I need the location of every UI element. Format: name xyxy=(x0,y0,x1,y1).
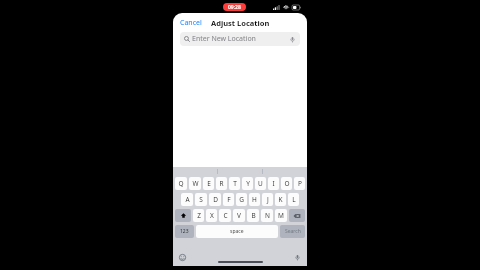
staticText: E xyxy=(207,179,211,188)
button[interactable]: R xyxy=(216,177,227,190)
button[interactable]: Dictation xyxy=(293,253,302,262)
button[interactable]: V xyxy=(233,209,245,222)
staticText: Q xyxy=(178,179,184,188)
staticText: Adjust Location xyxy=(211,18,270,28)
button[interactable]: K xyxy=(275,193,286,206)
staticText: A xyxy=(185,195,190,204)
button[interactable]: G xyxy=(236,193,247,206)
button[interactable]: D xyxy=(209,193,221,206)
button[interactable]: space xyxy=(196,225,278,238)
button[interactable]: Enter New Location xyxy=(180,32,300,46)
staticText: T xyxy=(233,179,237,188)
staticText: R xyxy=(219,179,224,188)
button[interactable]: P xyxy=(294,177,305,190)
staticText: M xyxy=(278,211,284,220)
button[interactable]: W xyxy=(189,177,201,190)
button[interactable]: E xyxy=(203,177,214,190)
button[interactable]: Backspace xyxy=(289,209,305,222)
staticText: K xyxy=(278,195,283,204)
staticText: J xyxy=(267,195,269,204)
staticText: I xyxy=(272,179,275,188)
staticText: P xyxy=(298,179,302,188)
button[interactable]: 123 xyxy=(175,225,194,238)
button[interactable]: I xyxy=(268,177,279,190)
button[interactable]: Emoji xyxy=(178,253,187,262)
staticText: Z xyxy=(197,211,201,220)
button[interactable]: O xyxy=(281,177,292,190)
button[interactable]: N xyxy=(261,209,273,222)
staticText: C xyxy=(223,211,228,220)
staticText: O xyxy=(284,179,290,188)
staticText: 123 xyxy=(180,228,189,235)
staticText: W xyxy=(192,179,199,188)
staticText: Search xyxy=(285,228,301,235)
staticText: X xyxy=(210,211,214,220)
button[interactable]: S xyxy=(195,193,207,206)
staticText: B xyxy=(251,211,256,220)
staticText: V xyxy=(237,211,241,220)
staticText: D xyxy=(213,195,218,204)
button[interactable]: M xyxy=(275,209,287,222)
button[interactable]: Shift xyxy=(175,209,191,222)
staticText: S xyxy=(199,195,203,204)
button[interactable]: B xyxy=(247,209,259,222)
staticText: F xyxy=(227,195,231,204)
button[interactable]: X xyxy=(206,209,217,222)
button[interactable]: Voice search xyxy=(289,36,296,43)
staticText: H xyxy=(252,195,257,204)
staticText: Y xyxy=(246,179,250,188)
staticText: L xyxy=(292,195,296,204)
button[interactable]: Z xyxy=(193,209,204,222)
button[interactable]: Search xyxy=(280,225,305,238)
staticText: N xyxy=(265,211,270,220)
button[interactable]: A xyxy=(181,193,193,206)
button[interactable]: F xyxy=(223,193,234,206)
staticText: 09:28 xyxy=(228,4,241,11)
button[interactable]: H xyxy=(249,193,260,206)
button[interactable]: L xyxy=(288,193,299,206)
button[interactable]: J xyxy=(262,193,273,206)
staticText: G xyxy=(239,195,244,204)
staticText: Cancel xyxy=(180,18,202,28)
staticText: Enter New Location xyxy=(192,34,256,44)
staticText: space xyxy=(230,228,244,235)
button[interactable]: Y xyxy=(242,177,253,190)
button[interactable]: T xyxy=(229,177,240,190)
button[interactable]: C xyxy=(219,209,231,222)
staticText: U xyxy=(258,179,263,188)
button[interactable]: Cancel xyxy=(178,16,204,30)
button[interactable]: Q xyxy=(175,177,187,190)
button[interactable]: U xyxy=(255,177,266,190)
